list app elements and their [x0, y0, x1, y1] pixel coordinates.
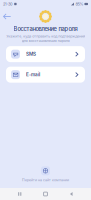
button[interactable]: Back: [0, 10, 14, 23]
staticText: SMS: [26, 51, 36, 57]
button[interactable]: Recent apps: [14, 190, 26, 198]
button[interactable]: Перейти на сайт компании: [0, 166, 91, 182]
button[interactable]: Back: [65, 190, 77, 198]
staticText: Укажите, куда отправить код подтверждени…: [6, 34, 85, 43]
staticText: Перейти на сайт компании: [22, 178, 69, 182]
staticText: E-mail: [26, 72, 40, 77]
button[interactable]: Home: [39, 190, 51, 198]
staticText: Восстановление пароля: [13, 25, 77, 32]
button[interactable]: SMS: [6, 46, 85, 62]
staticText: 85%: [75, 2, 83, 6]
staticText: 21:30: [3, 2, 13, 6]
button[interactable]: E-mail: [6, 67, 85, 83]
